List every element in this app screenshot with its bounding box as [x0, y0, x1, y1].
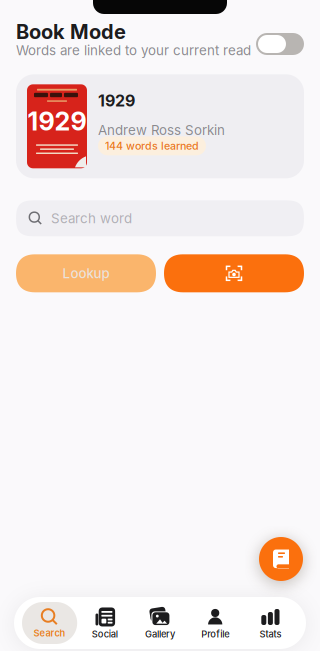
- staticText: Gallery: [145, 628, 175, 639]
- button[interactable]: Search: [22, 602, 77, 644]
- staticText: Social: [92, 628, 118, 639]
- staticText: Stats: [259, 628, 281, 639]
- button[interactable]: Gallery: [132, 606, 188, 639]
- staticText: 1929: [98, 91, 135, 110]
- staticText: 1929: [27, 106, 86, 136]
- staticText: Andrew Ross Sorkin: [98, 122, 225, 138]
- button[interactable]: Scan with camera: [164, 254, 304, 292]
- staticText: Search word: [51, 210, 132, 226]
- staticText: Search: [34, 627, 66, 638]
- button[interactable]: Lookup: [16, 254, 156, 292]
- button[interactable]: Social: [77, 606, 132, 639]
- staticText: Lookup: [62, 265, 109, 281]
- button[interactable]: Search word: [16, 200, 304, 236]
- staticText: 144 words learned: [105, 139, 199, 152]
- staticText: Words are linked to your current read: [16, 43, 251, 58]
- button[interactable]: Book Mode: [256, 33, 304, 55]
- staticText: Profile: [201, 628, 229, 639]
- button[interactable]: My book: [259, 537, 303, 581]
- button[interactable]: Stats: [243, 606, 298, 639]
- staticText: Book Mode: [16, 20, 126, 44]
- button[interactable]: Profile: [188, 606, 243, 639]
